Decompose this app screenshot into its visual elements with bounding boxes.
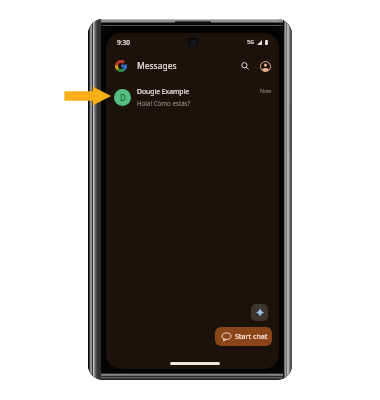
button[interactable]: Search: [237, 58, 253, 74]
staticText: Now: [260, 87, 272, 94]
staticText: Dougie Example: [137, 87, 190, 96]
button[interactable]: Gemini assistant: [251, 304, 268, 321]
button[interactable]: Start chat: [215, 327, 272, 346]
staticText: D: [120, 92, 126, 103]
staticText: Hola! Cómo estás?: [137, 99, 191, 107]
staticText: 5G: [247, 38, 255, 45]
button[interactable]: D: [106, 84, 279, 110]
staticText: Start chat: [235, 332, 268, 342]
staticText: Messages: [137, 60, 177, 72]
staticText: 9:30: [117, 38, 130, 47]
button[interactable]: Account: [256, 57, 274, 75]
